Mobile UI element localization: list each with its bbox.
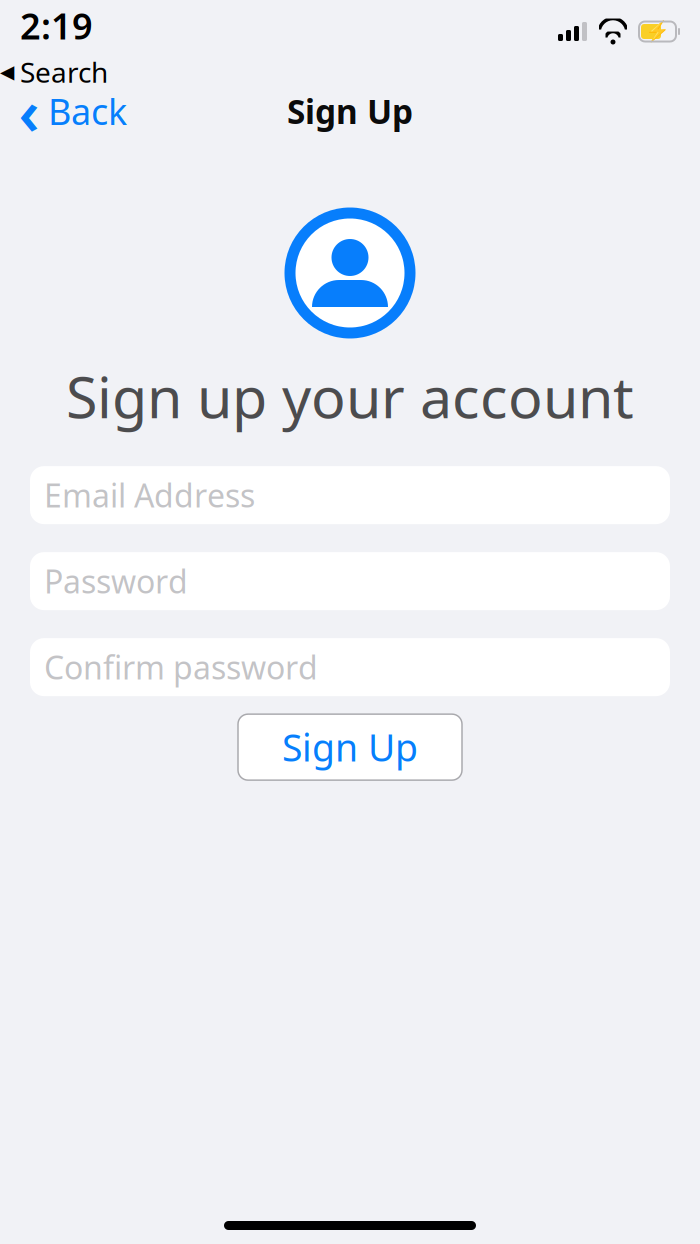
button[interactable]: Sign Up [238, 714, 462, 780]
staticText: Sign Up [282, 722, 418, 772]
button[interactable]: ‹ [0, 81, 127, 141]
staticText: ⚡ [645, 20, 670, 43]
staticText: Search [20, 53, 108, 90]
staticText: Sign Up [287, 89, 413, 133]
staticText: ‹ [18, 70, 39, 152]
staticText: Password [44, 560, 188, 602]
staticText: ◀ [0, 61, 14, 82]
staticText: Back [48, 87, 127, 135]
staticText: Confirm password [44, 646, 318, 688]
staticText: Email Address [44, 474, 255, 516]
staticText: 2:19 [20, 1, 93, 49]
staticText: Sign up your account [66, 358, 634, 434]
button[interactable]: ◀ [0, 53, 108, 90]
